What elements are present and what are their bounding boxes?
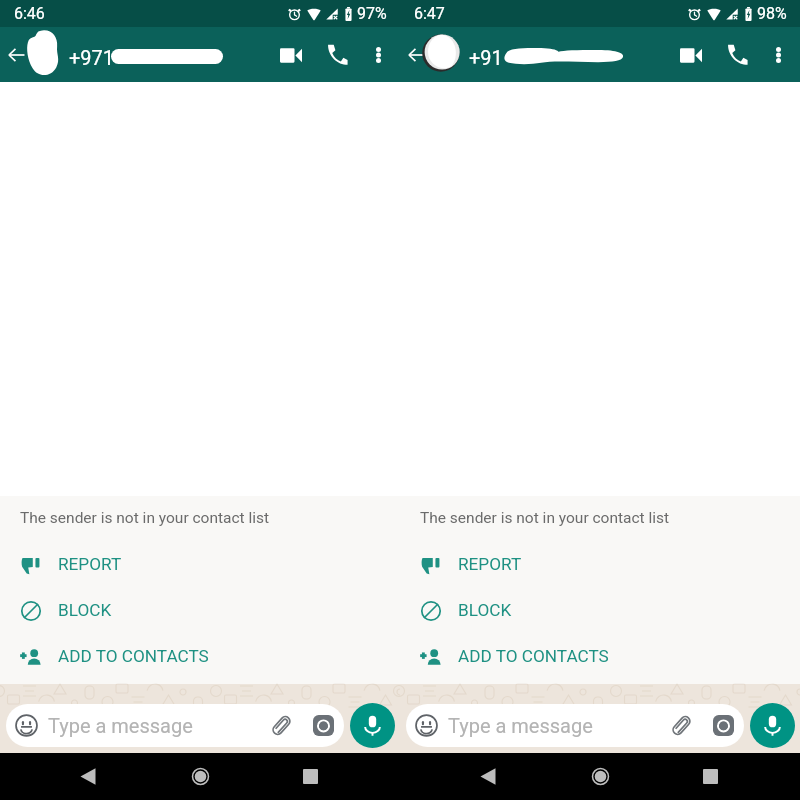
button[interactable]: REPORT [400, 540, 800, 586]
staticText: Type a message [48, 714, 269, 737]
staticText: REPORT [58, 554, 122, 574]
button[interactable]: Type a message [6, 704, 344, 747]
button[interactable]: Camera [706, 710, 737, 741]
button[interactable]: Voice call [312, 27, 358, 82]
button[interactable]: ADD TO CONTACTS [0, 632, 400, 678]
button[interactable]: Voice call [712, 27, 758, 82]
staticText: ADD TO CONTACTS [458, 646, 609, 666]
button[interactable]: Contact photo [21, 29, 64, 77]
staticText: 6:47 [414, 4, 445, 23]
staticText: The sender is not in your contact list [420, 509, 670, 527]
staticText: 97% [357, 4, 387, 23]
staticText: Type a message [448, 714, 669, 737]
button[interactable]: ADD TO CONTACTS [400, 632, 800, 678]
button[interactable]: Attach [269, 710, 300, 741]
button[interactable]: REPORT [0, 540, 400, 586]
staticText: +91 [469, 46, 503, 69]
button[interactable]: Video call [264, 27, 312, 82]
button[interactable]: BLOCK [0, 586, 400, 632]
button[interactable]: Video call [664, 27, 712, 82]
button[interactable]: Back [67, 753, 109, 800]
button[interactable]: Emoji [10, 709, 43, 742]
button[interactable]: Emoji [410, 709, 443, 742]
button[interactable]: BLOCK [400, 586, 800, 632]
button[interactable]: More options [758, 27, 800, 82]
staticText: ADD TO CONTACTS [58, 646, 209, 666]
staticText: BLOCK [458, 600, 512, 620]
button[interactable]: Recent apps [289, 753, 331, 800]
button[interactable]: Voice message [350, 703, 395, 748]
staticText: +971 [69, 46, 115, 69]
button[interactable]: Camera [306, 710, 337, 741]
button[interactable]: Type a message [406, 704, 744, 747]
button[interactable]: Contact photo [421, 29, 464, 77]
button[interactable]: Back [0, 27, 32, 82]
button[interactable]: Back [400, 27, 432, 82]
staticText: REPORT [458, 554, 522, 574]
staticText: The sender is not in your contact list [20, 509, 270, 527]
button[interactable]: Home [579, 753, 621, 800]
button[interactable]: Attach [669, 710, 700, 741]
staticText: 6:46 [14, 4, 45, 23]
staticText: BLOCK [58, 600, 112, 620]
button[interactable]: Recent apps [689, 753, 731, 800]
staticText: 98% [757, 4, 787, 23]
button[interactable]: More options [358, 27, 400, 82]
button[interactable]: Back [467, 753, 509, 800]
button[interactable]: Voice message [750, 703, 795, 748]
button[interactable]: Home [179, 753, 221, 800]
